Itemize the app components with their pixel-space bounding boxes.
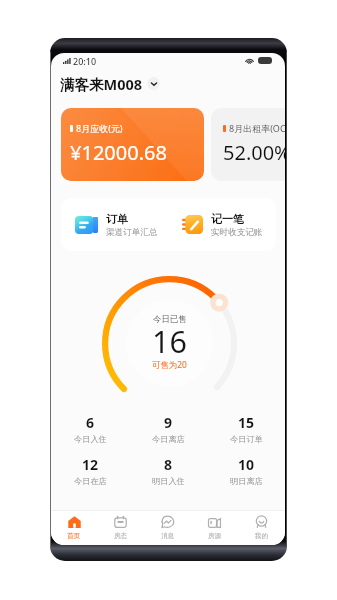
staticText: 15 — [238, 413, 255, 432]
button[interactable]: 12 — [51, 452, 129, 494]
staticText: 16 — [152, 320, 187, 362]
staticText: 实时收支记账 — [211, 227, 263, 238]
staticText: 20:10 — [73, 55, 97, 67]
button[interactable]: 消息 — [144, 511, 191, 545]
staticText: 满客来M008 — [60, 74, 143, 92]
staticText: 房态 — [114, 532, 128, 540]
staticText: 今日在店 — [74, 476, 107, 486]
staticText: 今日入住 — [74, 434, 107, 444]
staticText: 明日入住 — [152, 476, 185, 486]
staticText: 今日已售 — [153, 314, 187, 325]
button[interactable]: Switch property — [147, 77, 160, 90]
staticText: 8 — [164, 455, 173, 474]
staticText: 明日离店 — [230, 476, 263, 486]
button[interactable]: 记一笔 — [168, 198, 276, 251]
staticText: 我的 — [255, 532, 269, 540]
button[interactable]: 10 — [207, 452, 285, 494]
staticText: 今日离店 — [152, 434, 185, 444]
button[interactable]: 8月应收(元) — [61, 108, 204, 181]
staticText: 8月出租率(OCC) — [229, 122, 285, 134]
button[interactable]: 6 — [51, 410, 129, 452]
button[interactable]: 8月出租率(OCC) — [211, 108, 285, 181]
button[interactable]: 首页 — [51, 511, 97, 545]
staticText: 房源 — [208, 532, 222, 540]
button[interactable]: 我的 — [238, 511, 285, 545]
staticText: 首页 — [67, 532, 81, 540]
button[interactable]: 房源 — [191, 511, 238, 545]
staticText: 记一笔 — [211, 212, 244, 226]
staticText: 消息 — [161, 532, 175, 540]
staticText: 8月应收(元) — [76, 122, 123, 134]
button[interactable]: 8 — [129, 452, 207, 494]
button[interactable]: 订单 — [61, 198, 168, 251]
staticText: 52.00% — [223, 139, 285, 166]
staticText: 今日订单 — [230, 434, 263, 444]
button[interactable]: 15 — [207, 410, 285, 452]
staticText: 9 — [164, 413, 173, 432]
staticText: 订单 — [106, 212, 128, 226]
staticText: ¥12000.68 — [70, 139, 167, 166]
staticText: 渠道订单汇总 — [106, 227, 158, 238]
staticText: 6 — [86, 413, 95, 432]
staticText: 10 — [238, 455, 255, 474]
button[interactable]: 9 — [129, 410, 207, 452]
staticText: 12 — [82, 455, 99, 474]
button[interactable]: 房态 — [97, 511, 144, 545]
staticText: 可售为20 — [152, 359, 187, 370]
